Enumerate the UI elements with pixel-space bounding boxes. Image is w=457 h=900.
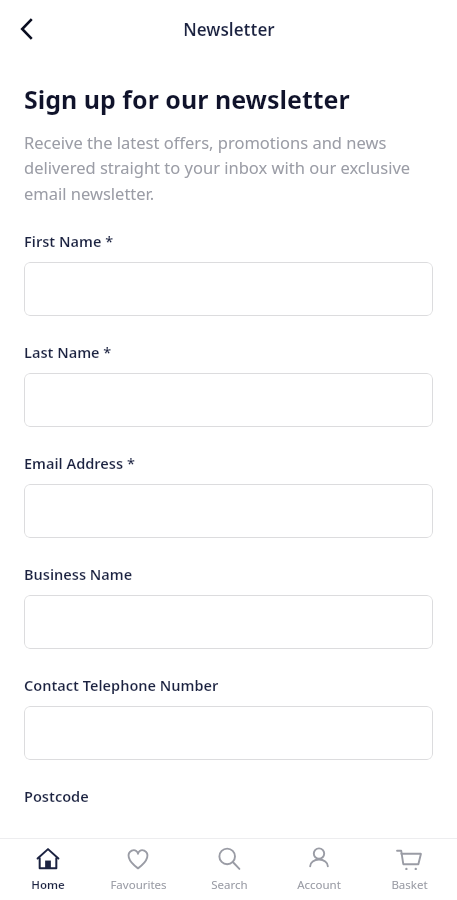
button[interactable]: [24, 484, 433, 538]
button[interactable]: Home: [6, 838, 90, 900]
staticText: Favourites: [110, 877, 167, 893]
staticText: Last Name *: [24, 342, 112, 362]
button[interactable]: [24, 262, 433, 316]
other: Home: [35, 846, 61, 872]
other: Account: [306, 846, 332, 872]
staticText: Sign up for our newsletter: [24, 82, 350, 116]
staticText: Newsletter: [183, 18, 275, 41]
staticText: Basket: [391, 877, 428, 893]
staticText: First Name *: [24, 231, 114, 251]
button[interactable]: [24, 373, 433, 427]
button[interactable]: Basket: [367, 838, 451, 900]
staticText: Business Name: [24, 564, 133, 584]
staticText: Receive the latest offers, promotions an…: [24, 131, 433, 205]
staticText: Account: [297, 877, 341, 893]
button[interactable]: Back: [6, 8, 48, 50]
staticText: Contact Telephone Number: [24, 675, 219, 695]
button[interactable]: [24, 706, 433, 760]
staticText: Postcode: [24, 786, 89, 806]
staticText: Home: [31, 877, 65, 893]
other: Favourites: [125, 846, 151, 872]
staticText: Search: [211, 877, 248, 893]
button[interactable]: Search: [187, 838, 271, 900]
staticText: Email Address *: [24, 453, 135, 473]
other: Search: [216, 846, 242, 872]
button[interactable]: Account: [277, 838, 361, 900]
other: Basket: [396, 846, 422, 872]
button[interactable]: [24, 595, 433, 649]
button[interactable]: Favourites: [96, 838, 180, 900]
